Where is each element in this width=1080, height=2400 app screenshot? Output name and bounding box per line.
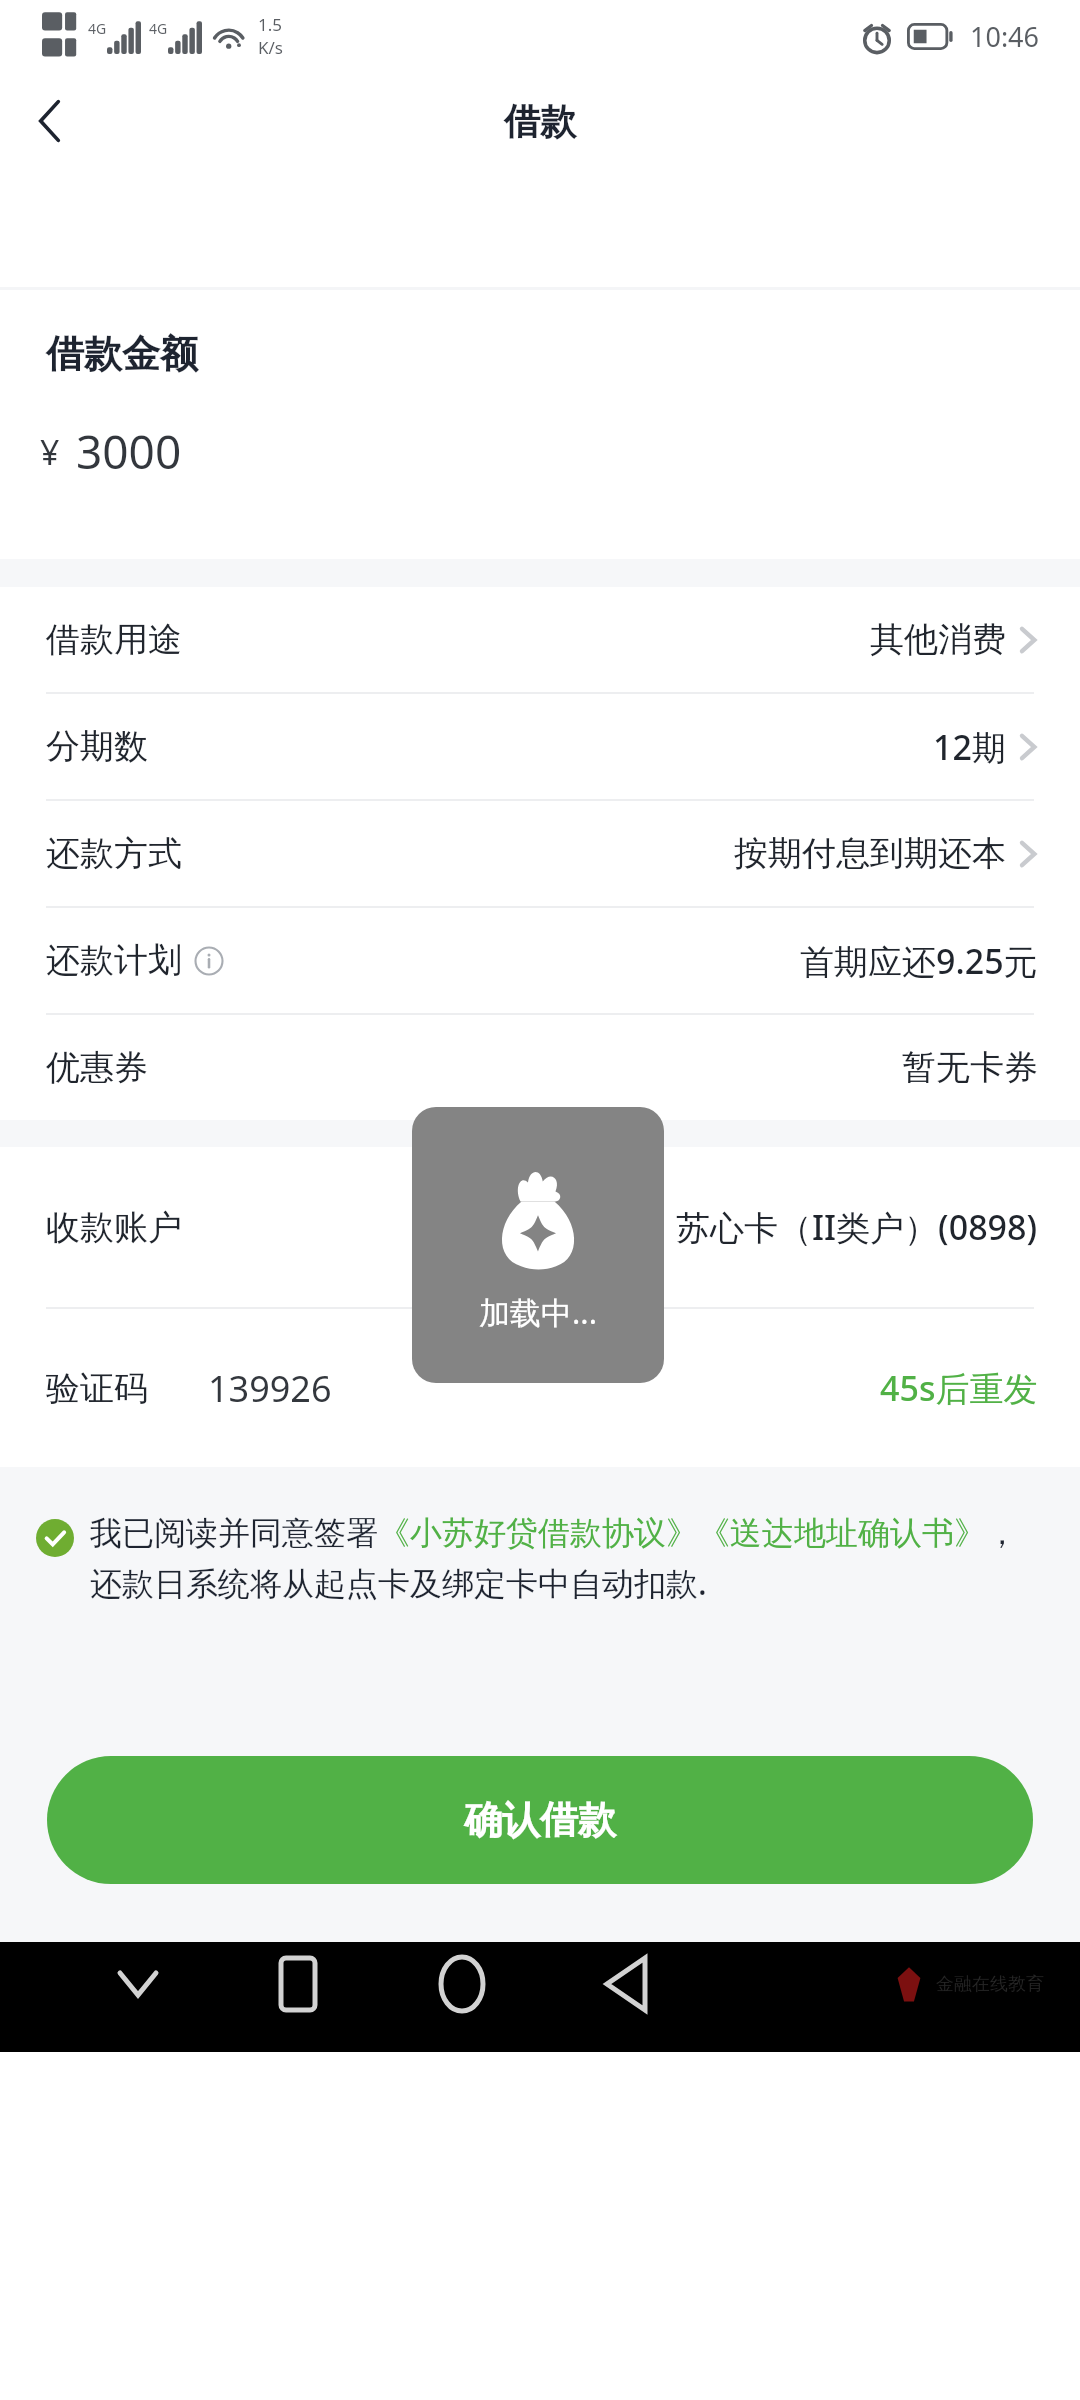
staticText: K/s: [258, 36, 283, 59]
staticText: 优惠券: [46, 1046, 148, 1089]
staticText: 还款方式: [46, 832, 182, 875]
staticText: 10:46: [970, 18, 1040, 55]
staticText: 按期付息到期还本: [734, 832, 1006, 875]
staticText: 借款用途: [46, 618, 182, 661]
button[interactable]: Back: [584, 1942, 668, 2026]
staticText: 3000: [76, 420, 182, 483]
button[interactable]: 还款计划: [0, 908, 1080, 1013]
button[interactable]: 借款用途: [0, 587, 1080, 692]
button[interactable]: Hide keyboard: [96, 1942, 180, 2026]
staticText: 45s后重发: [880, 1365, 1038, 1411]
staticText: 加载中...: [412, 1291, 664, 1333]
button[interactable]: 确认借款: [47, 1756, 1033, 1884]
button[interactable]: Recent apps: [256, 1942, 340, 2026]
staticText: 金融在线教育: [936, 1973, 1044, 1996]
staticText: 借款金额: [46, 330, 198, 378]
staticText: 收款账户: [46, 1206, 182, 1249]
button[interactable]: 优惠券: [0, 1015, 1080, 1120]
staticText: 确认借款: [464, 1796, 616, 1844]
staticText: 还款计划: [46, 939, 182, 982]
staticText: 1.5: [258, 13, 283, 36]
staticText: 12期: [933, 724, 1006, 770]
staticText: 分期数: [46, 725, 148, 768]
staticText: 借款: [504, 99, 576, 144]
staticText: 首期应还9.25元: [800, 938, 1038, 984]
button[interactable]: 分期数: [0, 694, 1080, 799]
staticText: 4G: [149, 19, 168, 38]
staticText: 我已阅读并同意签署《小苏好贷借款协议》《送达地址确认书》，还款日系统将从起点卡及…: [90, 1513, 1036, 1605]
button[interactable]: 还款方式: [0, 801, 1080, 906]
button[interactable]: Back: [0, 72, 100, 170]
staticText: 暂无卡券: [902, 1046, 1038, 1089]
staticText: 4G: [88, 19, 107, 38]
button[interactable]: 收款账户: [0, 1147, 1080, 1307]
button[interactable]: 45s后重发: [880, 1365, 1038, 1411]
staticText: 其他消费: [870, 618, 1006, 661]
staticText: 验证码: [46, 1367, 148, 1410]
button[interactable]: 我已阅读并同意签署《小苏好贷借款协议》《送达地址确认书》，还款日系统将从起点卡及…: [0, 1513, 1080, 1605]
button[interactable]: Home: [420, 1942, 504, 2026]
staticText: ¥: [40, 429, 60, 475]
staticText: 139926: [208, 1364, 332, 1413]
staticText: 苏心卡（II类户）(0898): [676, 1204, 1038, 1250]
